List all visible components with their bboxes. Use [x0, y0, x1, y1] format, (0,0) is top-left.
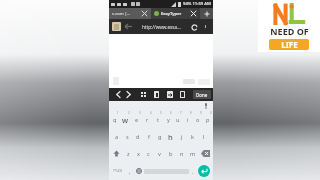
- button[interactable]: Bookmarks: [112, 22, 121, 31]
- button[interactable]: z: [123, 145, 133, 162]
- button[interactable]: b: [165, 145, 176, 162]
- staticText: s.com |...: [112, 11, 141, 17]
- button[interactable]: Paste: [163, 88, 176, 101]
- button[interactable]: x: [133, 145, 143, 162]
- staticText: 2: [128, 111, 130, 115]
- button[interactable]: http://www.essa...: [136, 24, 186, 30]
- button[interactable]: v: [154, 145, 165, 162]
- staticText: ,: [129, 168, 131, 175]
- staticText: 0: [210, 111, 212, 115]
- staticText: ?123: [113, 168, 123, 174]
- button[interactable]: Clipboard: [176, 88, 189, 101]
- staticText: e: [135, 116, 139, 124]
- button[interactable]: 7: [173, 111, 183, 128]
- staticText: w: [122, 115, 129, 125]
- staticText: 1: [117, 111, 119, 115]
- other: Back: [124, 24, 132, 29]
- staticText: v: [158, 150, 161, 158]
- button[interactable]: Voice input: [202, 102, 210, 110]
- button[interactable]: f: [143, 128, 154, 145]
- button[interactable]: Enter: [197, 162, 211, 180]
- staticText: NEED OF: [270, 25, 309, 37]
- staticText: g: [158, 133, 162, 141]
- button[interactable]: 4: [142, 111, 153, 128]
- staticText: h: [168, 132, 173, 142]
- button[interactable]: New tab: [200, 8, 213, 19]
- button[interactable]: s: [122, 128, 132, 145]
- staticText: 3: [139, 111, 141, 115]
- staticText: i: [187, 116, 189, 124]
- staticText: http://www.essa...: [142, 24, 181, 30]
- button[interactable]: 0: [203, 111, 213, 128]
- staticText: k: [191, 133, 194, 141]
- button[interactable]: g: [154, 128, 165, 145]
- staticText: f: [148, 133, 150, 141]
- staticText: LIFE: [281, 39, 298, 50]
- staticText: q: [113, 116, 117, 124]
- button[interactable]: .: [189, 162, 197, 180]
- staticText: 4: [150, 111, 152, 115]
- staticText: 7: [180, 111, 182, 115]
- button[interactable]: Close tab: [190, 10, 197, 17]
- staticText: Done: [196, 92, 208, 98]
- button[interactable]: m: [187, 145, 198, 162]
- button[interactable]: h: [165, 128, 176, 145]
- button[interactable]: c: [143, 145, 154, 162]
- staticText: 6: [170, 111, 172, 115]
- button[interactable]: Copy: [150, 88, 163, 101]
- staticText: c: [147, 150, 150, 158]
- button[interactable]: n: [176, 145, 187, 162]
- button[interactable]: 8: [183, 111, 193, 128]
- staticText: x: [137, 150, 140, 158]
- button[interactable]: Backspace: [198, 145, 213, 162]
- staticText: EasyTyper: [161, 11, 190, 17]
- staticText: s: [126, 133, 129, 141]
- button[interactable]: 1: [109, 111, 120, 128]
- staticText: b: [169, 150, 173, 158]
- staticText: 94% 11:59 AM: [183, 1, 211, 7]
- button[interactable]: Close tab: [141, 10, 148, 17]
- button[interactable]: k: [187, 128, 198, 145]
- staticText: r: [146, 116, 149, 124]
- button[interactable]: ,: [125, 162, 134, 180]
- button[interactable]: 2: [120, 111, 131, 128]
- button[interactable]: Previous field: [112, 88, 123, 101]
- button[interactable]: Next field: [123, 88, 134, 101]
- button[interactable]: a: [112, 128, 122, 145]
- staticText: z: [127, 150, 130, 158]
- staticText: t: [157, 116, 160, 124]
- button[interactable]: Reload: [189, 22, 199, 32]
- staticText: a: [115, 133, 119, 141]
- staticText: o: [196, 116, 200, 124]
- staticText: .: [192, 168, 194, 175]
- button[interactable]: Done: [193, 90, 211, 99]
- button[interactable]: Change language: [134, 162, 144, 180]
- staticText: j: [181, 133, 183, 141]
- staticText: u: [176, 116, 180, 124]
- staticText: l: [203, 133, 205, 141]
- staticText: y: [167, 116, 170, 124]
- button[interactable]: d: [132, 128, 143, 145]
- staticText: m: [190, 150, 196, 158]
- button[interactable]: l: [198, 128, 209, 145]
- button[interactable]: EasyTyper: [151, 8, 200, 19]
- button[interactable]: Space: [144, 165, 189, 177]
- staticText: 9: [200, 111, 202, 115]
- button[interactable]: 9: [193, 111, 203, 128]
- button[interactable]: 3: [131, 111, 142, 128]
- button[interactable]: Shift: [109, 145, 123, 162]
- staticText: n: [180, 150, 184, 158]
- button[interactable]: j: [176, 128, 187, 145]
- button[interactable]: 5: [153, 111, 163, 128]
- staticText: 8: [190, 111, 192, 115]
- staticText: p: [206, 116, 210, 124]
- staticText: d: [136, 133, 140, 141]
- button[interactable]: More options: [201, 22, 210, 31]
- staticText: 5: [160, 111, 162, 115]
- button[interactable]: Grid: [137, 88, 150, 101]
- button[interactable]: 6: [163, 111, 173, 128]
- button[interactable]: ?123: [111, 162, 125, 180]
- button[interactable]: s.com |...: [109, 8, 151, 19]
